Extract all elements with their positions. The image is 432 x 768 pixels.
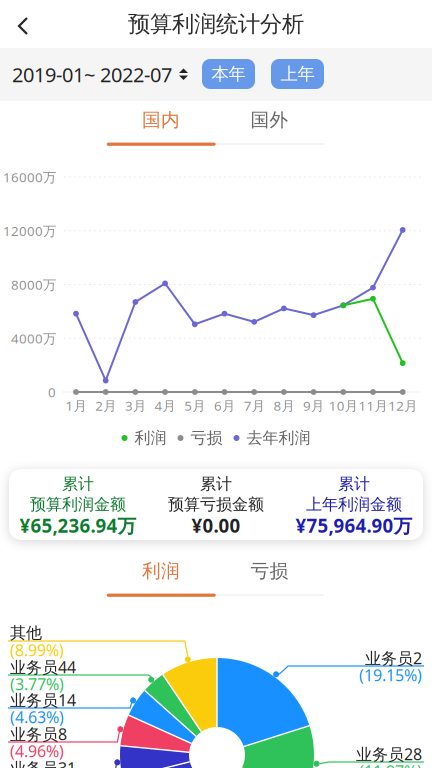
staticText: 亏损 <box>250 559 288 582</box>
staticText: (8.99%) <box>10 639 64 661</box>
staticText: 累计 <box>200 474 232 494</box>
button[interactable]: 本年 <box>202 59 255 89</box>
button[interactable]: 上年 <box>271 59 324 89</box>
staticText: 5月 <box>184 397 205 414</box>
staticText: 累计 <box>62 474 94 494</box>
staticText: 12月 <box>388 397 417 414</box>
staticText: (19.15%) <box>359 664 422 686</box>
button[interactable]: 利润 <box>107 551 215 591</box>
button[interactable]: 亏损 <box>215 551 323 591</box>
staticText: 累计 <box>338 474 370 494</box>
staticText: 12000万 <box>3 222 56 240</box>
staticText: (11.97%) <box>359 760 422 768</box>
staticText: 国外 <box>250 108 288 131</box>
button[interactable]: 国内 <box>107 100 215 140</box>
button[interactable]: Back <box>0 2 44 46</box>
button[interactable]: 国外 <box>215 100 323 140</box>
staticText: 9月 <box>303 397 324 414</box>
staticText: 1月 <box>65 397 86 414</box>
button[interactable]: 2019-01~ 2022-07 <box>0 48 200 101</box>
staticText: 7月 <box>244 397 265 414</box>
staticText: 国内 <box>142 108 180 131</box>
staticText: 亏损 <box>190 428 222 448</box>
staticText: 业务员44 <box>10 656 76 678</box>
staticText: ¥65,236.94万 <box>19 513 136 538</box>
staticText: 业务员31 <box>10 757 76 768</box>
staticText: 业务员14 <box>10 689 76 711</box>
staticText: 4月 <box>155 397 176 414</box>
staticText: 利润 <box>134 428 166 448</box>
staticText: 本年 <box>211 63 245 85</box>
staticText: 去年利润 <box>246 428 310 448</box>
staticText: 0 <box>48 383 56 401</box>
staticText: (4.63%) <box>10 706 64 728</box>
staticText: ¥0.00 <box>191 513 240 538</box>
staticText: 业务员28 <box>356 743 422 765</box>
staticText: (4.96%) <box>10 740 64 762</box>
staticText: 业务员2 <box>365 647 422 669</box>
staticText: 上年 <box>280 63 314 85</box>
staticText: 16000万 <box>3 168 56 186</box>
staticText: 4000万 <box>11 329 56 347</box>
staticText: 10月 <box>329 397 358 414</box>
staticText: 8000万 <box>11 276 56 293</box>
staticText: 2月 <box>95 397 116 414</box>
staticText: 预算亏损金额 <box>168 495 264 514</box>
staticText: 业务员8 <box>10 723 67 745</box>
staticText: 8月 <box>273 397 294 414</box>
staticText: 预算利润统计分析 <box>128 10 304 38</box>
staticText: 2019-01~ 2022-07 <box>12 61 172 88</box>
staticText: ¥75,964.90万 <box>295 513 412 538</box>
staticText: 3月 <box>125 397 146 414</box>
staticText: 6月 <box>214 397 235 414</box>
staticText: 预算利润金额 <box>30 495 126 514</box>
staticText: 利润 <box>142 559 180 582</box>
staticText: (3.77%) <box>10 673 64 695</box>
staticText: 11月 <box>358 397 387 414</box>
staticText: 其他 <box>10 623 42 643</box>
staticText: 上年利润金额 <box>306 495 402 514</box>
